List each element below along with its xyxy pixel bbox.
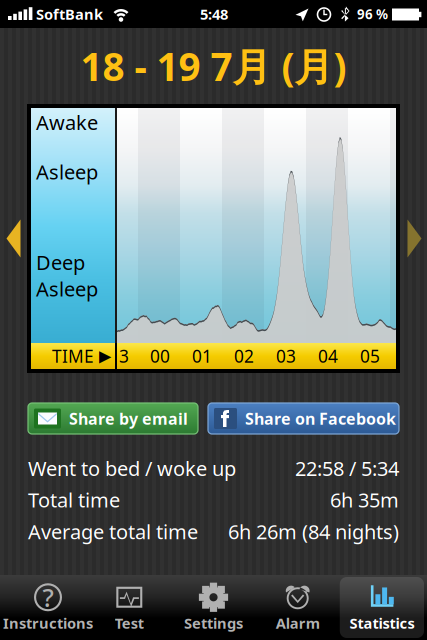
staticText: 96 %: [357, 5, 388, 23]
staticText: Share by email: [69, 408, 188, 429]
staticText: 01: [192, 344, 212, 367]
button[interactable]: Next day: [400, 104, 427, 373]
button[interactable]: Settings: [171, 577, 256, 638]
staticText: 04: [318, 344, 338, 367]
staticText: Instructions: [3, 613, 93, 633]
staticText: 05: [360, 344, 380, 367]
staticText: Asleep: [36, 275, 98, 302]
staticText: 02: [234, 344, 254, 367]
staticText: 22:58 / 5:34: [295, 455, 399, 482]
staticText: ▶: [94, 347, 111, 365]
staticText: 5:48: [200, 4, 228, 24]
staticText: Settings: [184, 613, 243, 633]
button[interactable]: Test: [87, 577, 171, 638]
staticText: Awake: [36, 109, 98, 136]
button[interactable]: ?: [3, 577, 87, 638]
staticText: Alarm: [276, 613, 320, 633]
staticText: Asleep: [36, 159, 98, 185]
button[interactable]: Alarm: [256, 577, 340, 638]
staticText: 18 - 19 7月 (月): [80, 40, 346, 92]
staticText: ?: [42, 580, 53, 614]
staticText: Average total time: [28, 518, 198, 545]
staticText: 6h 26m (84 nights): [228, 518, 399, 545]
staticText: Share on Facebook: [245, 408, 396, 429]
button[interactable]: Previous day: [0, 104, 27, 373]
staticText: 6h 35m: [330, 487, 399, 513]
staticText: Statistics: [349, 613, 414, 633]
staticText: 03: [276, 344, 296, 367]
staticText: TIME: [52, 344, 94, 367]
staticText: Went to bed / woke up: [28, 455, 236, 482]
staticText: Test: [115, 613, 144, 633]
button[interactable]: Share by email: [28, 403, 198, 434]
staticText: SoftBank: [36, 4, 103, 24]
staticText: Deep: [36, 249, 85, 275]
staticText: 00: [150, 344, 170, 367]
staticText: 3: [119, 344, 129, 367]
button[interactable]: Statistics: [340, 577, 424, 638]
staticText: Total time: [28, 487, 120, 513]
button[interactable]: Share on Facebook: [208, 403, 399, 434]
